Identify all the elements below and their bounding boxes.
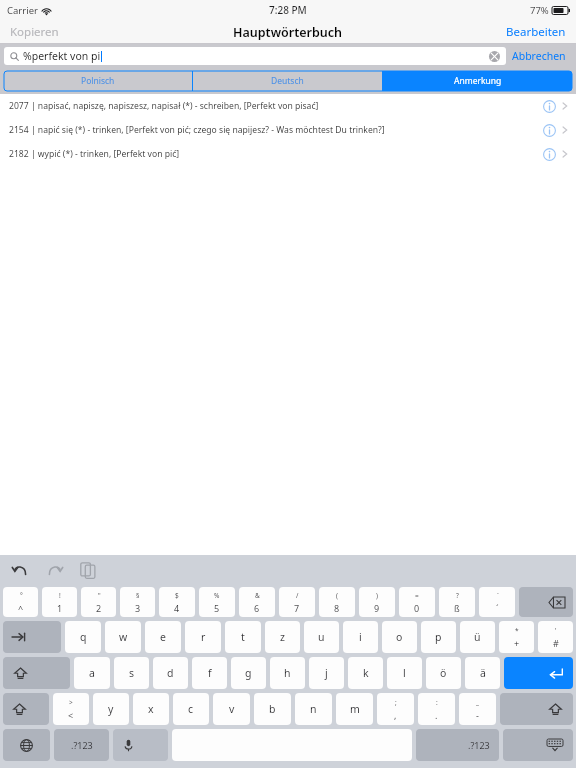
staticText: 1 [57,602,63,614]
staticText: ö [440,666,447,680]
button[interactable]: Info [543,124,556,137]
button[interactable]: $ [159,587,195,617]
staticText: .?123 [71,739,93,751]
button[interactable]: Change keyboard [3,729,50,761]
button[interactable]: s [114,657,149,689]
button[interactable]: m [336,693,373,725]
button[interactable]: ( [319,587,355,617]
button[interactable]: " [81,587,116,617]
staticText: ) [376,591,378,600]
button[interactable]: o [382,621,417,653]
button[interactable]: Deutsch [193,71,382,91]
button[interactable] [3,693,49,725]
button[interactable]: ? [439,587,475,617]
staticText: , [394,709,397,721]
button[interactable]: .?123 [416,729,499,761]
button[interactable]: c [173,693,209,725]
button[interactable]: Info [543,100,556,113]
button[interactable]: a [74,657,110,689]
button[interactable]: Kopieren [0,21,69,43]
staticText: k [363,666,369,680]
button[interactable]: f [192,657,227,689]
button[interactable] [3,657,70,689]
button[interactable]: g [231,657,266,689]
staticText: Carrier [7,4,38,17]
button[interactable]: ü [460,621,495,653]
button[interactable]: Info [543,148,556,161]
button[interactable]: n [295,693,332,725]
button[interactable]: 2182 | wypić (*) - trinken, [Perfekt von… [0,142,576,166]
button[interactable]: § [120,587,155,617]
button[interactable]: Anmerkung [383,71,572,91]
button[interactable]: v [213,693,250,725]
button[interactable]: * [499,621,534,653]
staticText: 2154 | napić się (*) - trinken, [Perfekt… [9,124,385,136]
button[interactable]: Redo [47,562,63,578]
button[interactable]: h [270,657,305,689]
button[interactable]: k [348,657,383,689]
button[interactable]: u [304,621,339,653]
button[interactable]: p [421,621,456,653]
staticText: Kopieren [10,24,59,40]
staticText: y [108,702,114,716]
button[interactable]: ' [538,621,573,653]
button[interactable] [3,621,61,653]
button[interactable]: y [93,693,129,725]
button[interactable]: Dictate [113,729,168,761]
button[interactable]: e [145,621,181,653]
button[interactable]: Hide keyboard [503,729,573,761]
button[interactable]: d [153,657,188,689]
button[interactable]: w [105,621,141,653]
button[interactable]: .?123 [54,729,109,761]
button[interactable]: & [239,587,275,617]
staticText: Deutsch [271,75,304,87]
button[interactable]: 2077 | napisać, napiszę, napiszesz, napi… [0,94,576,118]
button[interactable]: ö [426,657,461,689]
button[interactable]: _ [459,693,496,725]
staticText: 2 [96,602,102,614]
button[interactable]: : [418,693,455,725]
staticText: " [98,591,101,600]
staticText: Hauptwörterbuch [233,24,343,41]
button[interactable] [519,587,573,617]
button[interactable]: %perfekt von pi [4,47,506,65]
button[interactable]: % [199,587,235,617]
button[interactable]: j [309,657,344,689]
button[interactable]: ) [359,587,395,617]
button[interactable]: = [399,587,435,617]
button[interactable]: ; [377,693,414,725]
button[interactable]: Bearbeiten [496,21,576,43]
staticText: ? [456,591,459,600]
other: Dictate [124,729,168,761]
button[interactable]: Paste [80,562,96,578]
button[interactable]: > [53,693,89,725]
other: Hide keyboard [503,729,563,761]
staticText: Abbrechen [512,49,566,63]
button[interactable]: Undo [12,562,28,578]
button[interactable] [500,693,573,725]
button[interactable]: t [225,621,261,653]
button[interactable]: z [265,621,300,653]
button[interactable]: ä [465,657,500,689]
button[interactable]: Abbrechen [506,47,572,65]
staticText: 9 [374,602,380,614]
button[interactable]: r [185,621,221,653]
button[interactable]: l [387,657,422,689]
button[interactable]: q [65,621,101,653]
button[interactable]: ` [479,587,515,617]
button[interactable]: ° [3,587,38,617]
button[interactable]: Polnisch [4,71,192,91]
button[interactable] [504,657,573,689]
button[interactable]: / [279,587,315,617]
staticText: x [148,702,154,716]
button[interactable]: i [343,621,378,653]
button[interactable]: Clear search [489,51,500,62]
staticText: b [269,702,276,716]
button[interactable]: x [133,693,169,725]
button[interactable]: ! [42,587,77,617]
staticText: s [129,666,135,680]
button[interactable]: b [254,693,291,725]
button[interactable]: 2154 | napić się (*) - trinken, [Perfekt… [0,118,576,142]
staticText: § [136,591,140,600]
